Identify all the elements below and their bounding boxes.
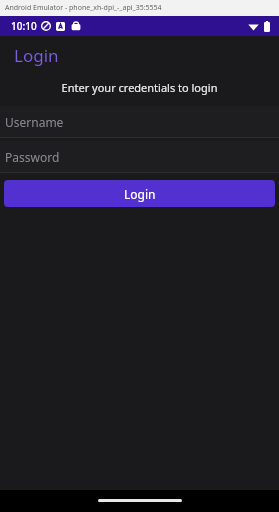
button[interactable]: Password input field [0,141,279,176]
button[interactable]: Login [4,180,275,207]
staticText: Android Emulator - phone_xh-dpi_-_api_35… [5,3,162,13]
staticText: Username [5,114,64,130]
button[interactable]: Username input field [0,106,279,141]
staticText: Password [5,149,60,165]
staticText: Login [14,44,59,67]
staticText: 10:10 [11,19,37,33]
staticText: Enter your credentials to login [12,80,267,95]
staticText: Login [124,186,156,202]
